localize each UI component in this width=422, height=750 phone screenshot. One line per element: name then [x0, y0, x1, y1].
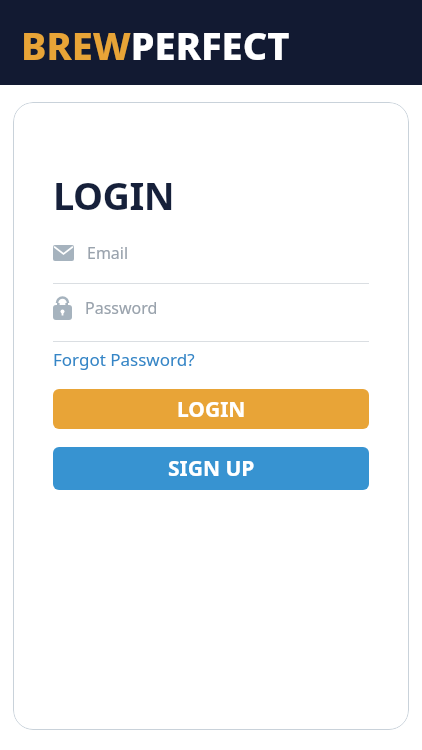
staticText: Password: [85, 297, 158, 319]
staticText: BREWPERFECT: [21, 19, 290, 71]
button[interactable]: LOGIN: [53, 389, 369, 429]
button[interactable]: Password: [53, 296, 369, 320]
staticText: Email: [87, 242, 129, 264]
staticText: LOGIN: [177, 395, 246, 424]
staticText: SIGN UP: [168, 454, 255, 483]
button[interactable]: Forgot Password?: [53, 348, 195, 371]
button[interactable]: SIGN UP: [53, 447, 369, 490]
staticText: LOGIN: [53, 169, 175, 221]
button[interactable]: Email: [53, 242, 369, 264]
